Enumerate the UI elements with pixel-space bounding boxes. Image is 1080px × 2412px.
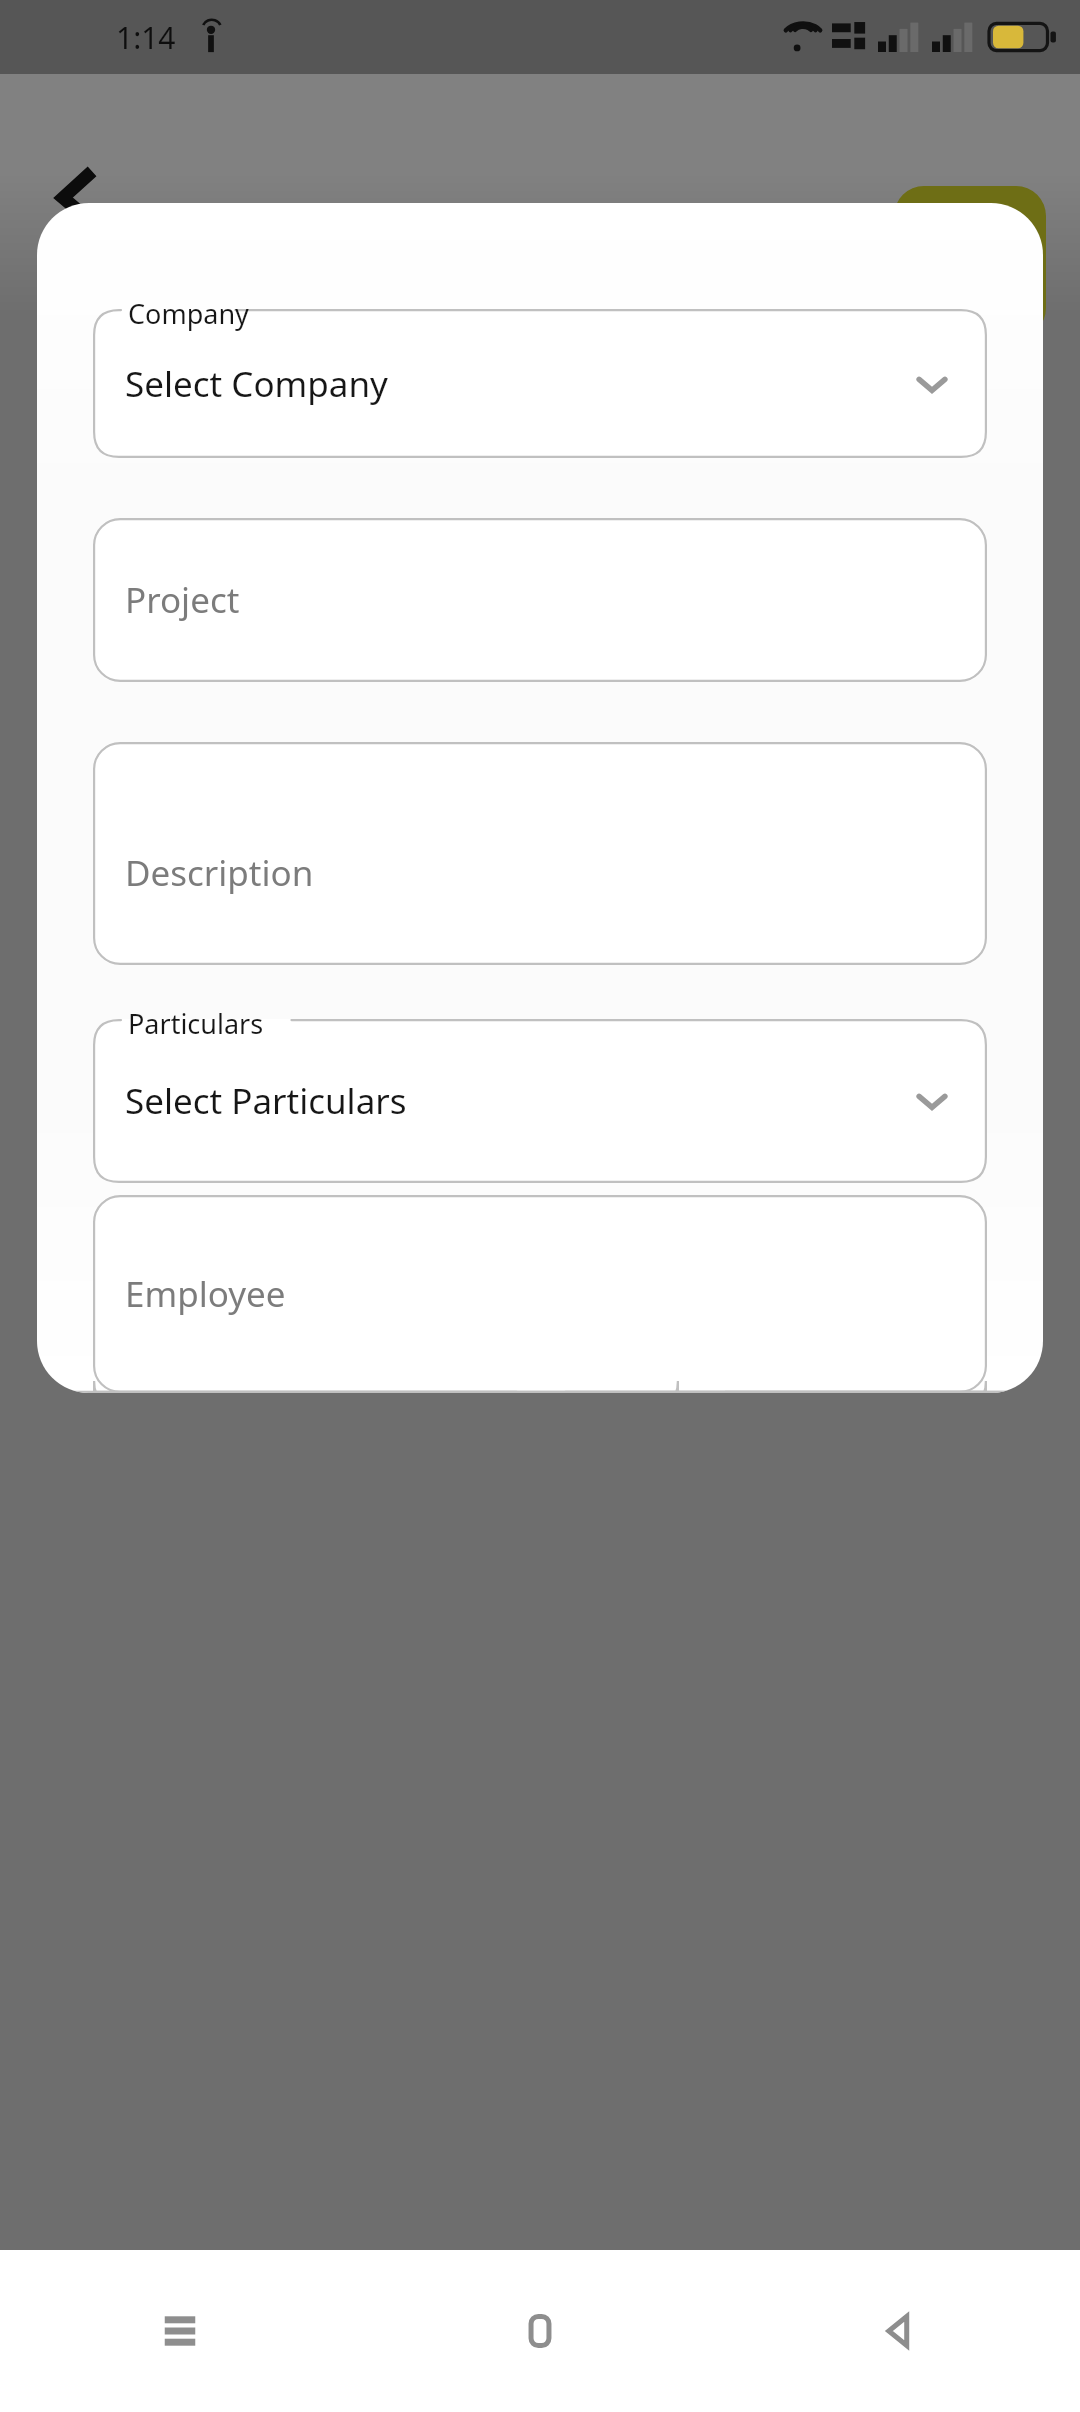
button[interactable]: Home bbox=[360, 2250, 720, 2412]
button[interactable] bbox=[93, 1019, 987, 1183]
staticText: Employee bbox=[125, 1270, 286, 1318]
button[interactable] bbox=[93, 742, 987, 965]
staticText: Project bbox=[125, 576, 240, 624]
button[interactable]: Save bbox=[894, 186, 1046, 338]
staticText: Select Company bbox=[125, 360, 388, 408]
button[interactable] bbox=[93, 518, 987, 682]
button[interactable]: Back bbox=[720, 2250, 1080, 2412]
staticText: Particulars bbox=[128, 1005, 264, 1042]
staticText: 1:14 bbox=[116, 17, 176, 58]
button[interactable] bbox=[93, 1195, 987, 1393]
button[interactable]: Back bbox=[34, 152, 122, 240]
button[interactable]: Recent apps bbox=[0, 2250, 360, 2412]
button[interactable] bbox=[93, 309, 987, 458]
staticText: Company bbox=[128, 295, 249, 332]
staticText: Select Particulars bbox=[125, 1077, 407, 1125]
staticText: Description bbox=[125, 849, 314, 897]
